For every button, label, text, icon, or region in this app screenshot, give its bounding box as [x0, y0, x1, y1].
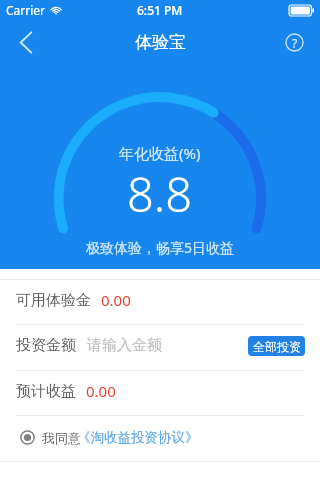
staticText: 全部投资 — [253, 339, 301, 354]
staticText: 0.00 — [86, 381, 116, 401]
staticText: 6:51 PM — [137, 2, 183, 18]
button[interactable]: 可用体验金 — [0, 280, 320, 324]
button[interactable]: Back — [0, 20, 48, 64]
staticText: 请输入金额 — [87, 336, 162, 355]
staticText: 体验宝 — [135, 32, 186, 53]
staticText: 《淘收益投资协议》 — [77, 429, 199, 446]
staticText: Carrier — [6, 2, 46, 18]
staticText: 8.8 — [127, 162, 193, 226]
staticText: 预计收益 — [16, 382, 76, 401]
staticText: ? — [292, 35, 298, 51]
staticText: 极致体验，畅享5日收益 — [86, 238, 235, 257]
button[interactable]: 我同意 — [0, 416, 320, 461]
staticText: 年化收益(%) — [119, 143, 201, 163]
button[interactable]: Help — [272, 20, 320, 64]
staticText: 0.00 — [101, 290, 131, 310]
button[interactable]: 全部投资 — [248, 336, 305, 356]
button[interactable]: 预计收益 — [0, 371, 320, 415]
staticText: 我同意 — [42, 430, 81, 446]
staticText: 投资金额 — [16, 336, 76, 355]
staticText: 可用体验金 — [16, 291, 91, 310]
